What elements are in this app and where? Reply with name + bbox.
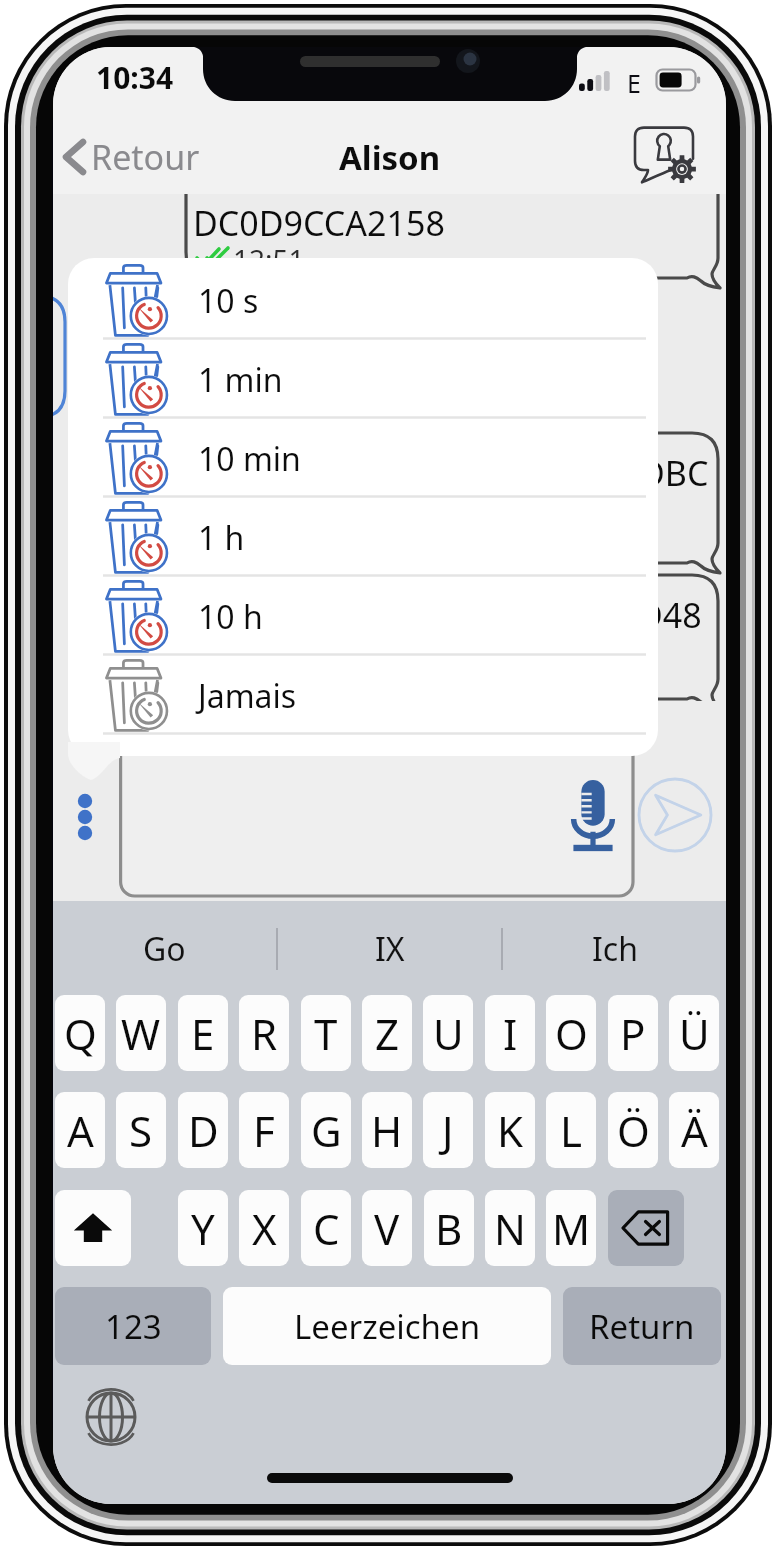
button[interactable]: Z xyxy=(362,995,412,1071)
staticText: E xyxy=(191,1005,215,1062)
staticText: 10 h xyxy=(198,595,263,639)
staticText: 1 min xyxy=(198,358,283,402)
button[interactable]: I xyxy=(485,995,535,1071)
staticText: W xyxy=(121,1005,161,1062)
button[interactable]: Y xyxy=(178,1190,228,1266)
button[interactable]: Go xyxy=(53,901,276,996)
button[interactable]: R xyxy=(239,995,289,1071)
button[interactable]: A xyxy=(55,1092,105,1168)
button[interactable]: IX xyxy=(278,901,501,996)
button[interactable]: K xyxy=(485,1092,535,1168)
button[interactable]: More options xyxy=(69,787,101,847)
staticText: H xyxy=(371,1102,403,1159)
button[interactable]: Return xyxy=(563,1287,721,1365)
staticText: Q xyxy=(64,1005,97,1062)
staticText: A xyxy=(67,1102,94,1159)
staticText: Go xyxy=(143,927,186,971)
staticText: M xyxy=(552,1200,591,1257)
button[interactable]: 1 min xyxy=(68,340,658,419)
staticText: Ü xyxy=(679,1005,710,1062)
staticText: Alison xyxy=(339,135,441,180)
staticText: K xyxy=(497,1102,523,1159)
staticText: Leerzeichen xyxy=(294,1304,481,1349)
staticText: 10 min xyxy=(198,437,301,481)
staticText: F xyxy=(253,1102,275,1159)
staticText: R xyxy=(251,1005,278,1062)
button[interactable]: Ä xyxy=(669,1092,719,1168)
button[interactable]: Retour xyxy=(53,134,210,180)
staticText: D xyxy=(188,1102,219,1159)
staticText: DC0D9CCA2158 xyxy=(193,200,445,246)
staticText: X xyxy=(252,1200,277,1257)
button[interactable]: Ö xyxy=(608,1092,658,1168)
staticText: Retour xyxy=(91,134,200,180)
button[interactable]: 123 xyxy=(55,1287,211,1365)
button[interactable]: Backspace xyxy=(608,1190,684,1266)
staticText: Ich xyxy=(592,927,638,971)
button[interactable]: S xyxy=(116,1092,166,1168)
button[interactable]: E xyxy=(178,995,228,1071)
staticText: Return xyxy=(589,1304,695,1349)
button[interactable]: Shift xyxy=(55,1190,131,1266)
button[interactable]: Ich xyxy=(503,901,726,996)
staticText: V xyxy=(374,1200,400,1257)
button[interactable]: J xyxy=(423,1092,473,1168)
staticText: Ö xyxy=(617,1102,650,1159)
button[interactable]: O xyxy=(546,995,596,1071)
button[interactable]: Leerzeichen xyxy=(223,1287,551,1365)
button[interactable]: Q xyxy=(55,995,105,1071)
button[interactable]: Jamais xyxy=(68,656,658,735)
staticText: N xyxy=(494,1200,526,1257)
button[interactable]: G xyxy=(301,1092,351,1168)
staticText: U xyxy=(433,1005,464,1062)
staticText: 10:34 xyxy=(96,57,174,98)
button[interactable]: T xyxy=(301,995,351,1071)
staticText: O xyxy=(555,1005,588,1062)
staticText: P xyxy=(620,1005,646,1062)
button[interactable]: M xyxy=(546,1190,596,1266)
button[interactable]: 1 h xyxy=(68,498,658,577)
staticText: 12:51 xyxy=(233,240,305,278)
staticText: Ä xyxy=(681,1102,708,1159)
staticText: G xyxy=(311,1102,342,1159)
button[interactable]: V xyxy=(362,1190,412,1266)
button[interactable]: Switch keyboard xyxy=(83,1389,139,1445)
button[interactable]: N xyxy=(485,1190,535,1266)
staticText: J xyxy=(442,1102,454,1159)
staticText: IX xyxy=(375,927,405,971)
button[interactable]: X xyxy=(239,1190,289,1266)
staticText: 3 xyxy=(535,388,557,440)
staticText: DBC xyxy=(640,450,709,496)
staticText: T xyxy=(314,1005,338,1062)
button[interactable]: B xyxy=(424,1190,474,1266)
button[interactable]: 10 min xyxy=(68,419,658,498)
button[interactable]: 10 s xyxy=(68,261,658,340)
button[interactable]: W xyxy=(116,995,166,1071)
staticText: I xyxy=(503,1005,518,1062)
button[interactable]: Ü xyxy=(669,995,719,1071)
staticText: 10 s xyxy=(198,279,259,323)
button[interactable]: U xyxy=(423,995,473,1071)
button[interactable]: 10 h xyxy=(68,577,658,656)
staticText: C xyxy=(313,1200,340,1257)
staticText: E xyxy=(627,66,641,100)
staticText: 123 xyxy=(105,1304,162,1349)
button[interactable]: C xyxy=(301,1190,351,1266)
staticText: Jamais xyxy=(198,674,297,718)
staticText: L xyxy=(560,1102,583,1159)
button[interactable]: L xyxy=(546,1092,596,1168)
button[interactable]: D xyxy=(178,1092,228,1168)
staticText: D48 xyxy=(638,592,702,638)
staticText: Z xyxy=(375,1005,400,1062)
button[interactable]: F xyxy=(239,1092,289,1168)
staticText: B xyxy=(435,1200,463,1257)
button[interactable]: P xyxy=(608,995,658,1071)
button[interactable]: Send xyxy=(637,777,713,853)
staticText: Y xyxy=(191,1200,215,1257)
staticText: 1 h xyxy=(198,516,245,560)
button[interactable]: Voice message xyxy=(563,776,623,856)
button[interactable]: Chat settings xyxy=(630,118,702,190)
staticText: S xyxy=(129,1102,153,1159)
button[interactable]: H xyxy=(362,1092,412,1168)
